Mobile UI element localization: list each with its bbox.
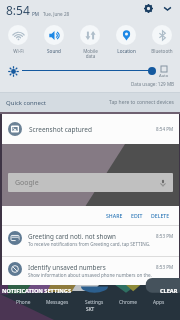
staticText: 8:53 PM [156,264,174,270]
staticText: Sound [47,48,61,54]
staticText: SHARE [106,212,123,219]
staticText: Tap here to connect devices [109,99,174,106]
staticText: Google [15,178,39,188]
staticText: NOTIFICATION SETTINGS [2,287,71,295]
staticText: Location [117,48,136,54]
button[interactable]: Location [108,25,144,63]
staticText: Mobile data [83,48,98,59]
button[interactable]: Apps [153,299,165,306]
staticText: Greeting card noti. not shown [28,232,116,241]
staticText: Chrome [119,299,137,306]
staticText: CLEAR [160,287,178,295]
button[interactable]: Wi-Fi [0,25,36,63]
staticText: 8:53 PM [156,233,174,239]
staticText: Bluetooth [151,48,173,54]
button[interactable]: NOTIFICATION SETTINGS [2,287,71,295]
staticText: Show information about unsaved phone num… [28,272,152,278]
button[interactable]: Messages [46,299,69,306]
button[interactable]: Chrome [119,299,137,306]
button[interactable]: Settings [141,1,156,16]
button[interactable]: Sound [36,25,72,63]
staticText: Screenshot captured [29,125,93,134]
staticText: SKT [86,306,95,313]
button[interactable]: Phone [16,299,31,306]
staticText: To receive notifications from Greeting c… [28,241,151,247]
button[interactable]: Identify unsaved numbers [8,257,174,285]
button[interactable]: Google [8,173,173,192]
staticText: Phone [16,299,31,306]
button[interactable]: EDIT [127,206,147,225]
staticText: Quick connect [6,99,46,107]
button[interactable]: Auto [159,66,169,79]
staticText: Settings [85,299,104,306]
button[interactable]: Screenshot captured [8,114,174,144]
button[interactable]: Mobile data [72,25,108,63]
button[interactable]: Settings [85,299,104,306]
staticText: EDIT [131,212,143,219]
staticText: 8:54 [6,2,30,18]
staticText: Apps [153,299,165,306]
button[interactable]: Bluetooth [144,25,180,63]
staticText: 8:54 PM [156,126,174,132]
staticText: Messages [46,299,69,306]
button[interactable]: CLEAR [160,287,178,295]
button[interactable]: DELETE [147,206,174,225]
staticText: PM [32,11,39,17]
staticText: Data usage: 129 MB [131,81,175,87]
staticText: Tue, June 28 [43,11,70,17]
button[interactable]: SHARE [102,206,127,225]
staticText: DELETE [151,212,170,219]
staticText: Auto [159,73,169,79]
staticText: Identify unsaved numbers [28,263,106,272]
button[interactable]: Quick connect [6,93,174,112]
button[interactable]: Collapse panel [160,1,175,16]
staticText: Wi-Fi [13,48,24,54]
button[interactable]: Greeting card noti. not shown [8,226,174,256]
